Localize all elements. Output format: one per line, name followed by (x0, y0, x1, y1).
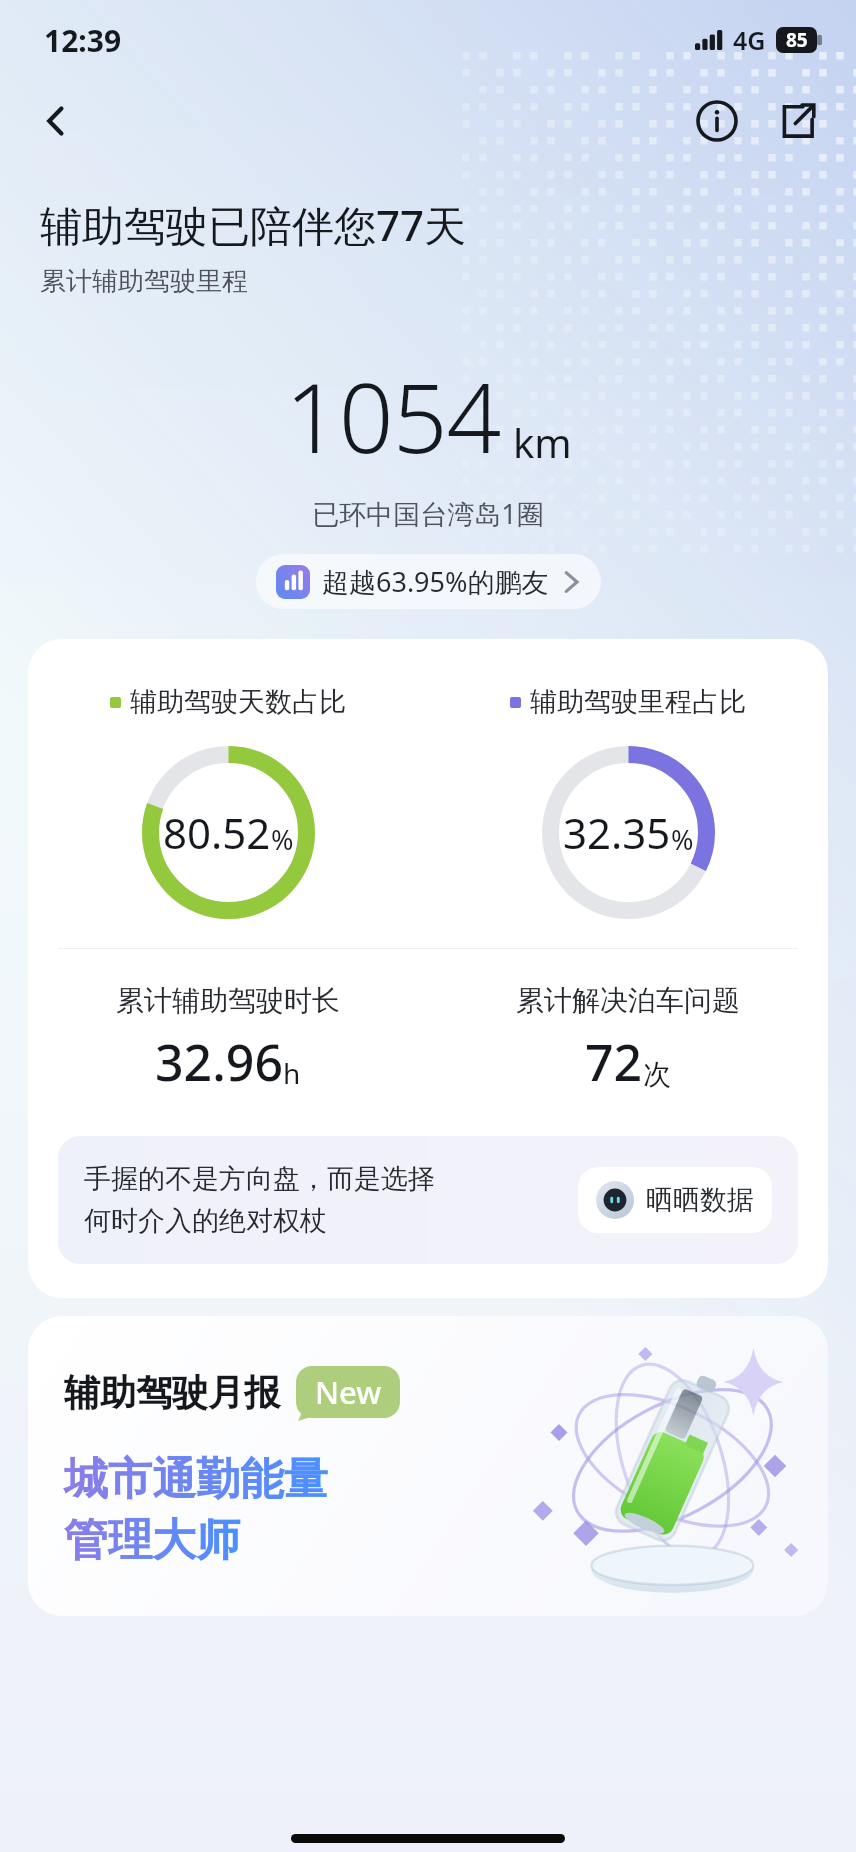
staticText: 辅助驾驶天数占比 (130, 685, 346, 719)
staticText: km (513, 415, 572, 469)
staticText: 辅助驾驶月报 (64, 1370, 280, 1415)
button[interactable]: 超越63.95%的鹏友 (256, 554, 601, 609)
button[interactable]: 辅助驾驶天数占比 (28, 639, 828, 1298)
staticText: 累计辅助驾驶里程 (40, 265, 248, 298)
staticText: h (283, 1054, 301, 1092)
staticText: 4G (733, 23, 766, 57)
staticText: 80.52 (163, 804, 271, 861)
button[interactable]: Back (26, 91, 86, 151)
staticText: 累计辅助驾驶时长 (116, 983, 340, 1018)
staticText: 手握的不是方向盘，而是选择 (84, 1162, 435, 1196)
staticText: 晒晒数据 (646, 1183, 754, 1217)
staticText: 已环中国台湾岛1圈 (0, 495, 856, 532)
staticText: 何时介入的绝对权杖 (84, 1204, 327, 1238)
staticText: New (315, 1371, 382, 1413)
staticText: 12:39 (44, 20, 122, 61)
staticText: % (671, 821, 694, 858)
staticText: 管理大师 (64, 1513, 240, 1568)
button[interactable]: Info (686, 90, 748, 152)
staticText: 1054 (285, 350, 501, 481)
staticText: 85 (786, 27, 808, 53)
button[interactable]: Share (766, 90, 828, 152)
button[interactable]: 晒晒数据 (578, 1167, 772, 1233)
staticText: 城市通勤能量 (64, 1452, 328, 1507)
staticText: 32.35 (563, 804, 671, 861)
button[interactable]: 辅助驾驶月报 (28, 1316, 828, 1616)
staticText: 次 (643, 1057, 671, 1092)
staticText: 72 (585, 1028, 643, 1096)
staticText: 32.96 (155, 1028, 283, 1096)
staticText: 辅助驾驶已陪伴您77天 (40, 196, 467, 253)
staticText: % (271, 821, 294, 858)
staticText: 超越63.95%的鹏友 (322, 563, 549, 600)
staticText: 累计解决泊车问题 (516, 983, 740, 1018)
staticText: 辅助驾驶里程占比 (530, 685, 746, 719)
